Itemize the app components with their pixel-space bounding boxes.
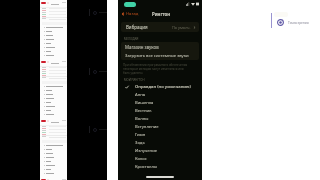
button[interactable]: Вестник (118, 107, 202, 115)
staticText: Вишенка (135, 100, 154, 106)
staticText: Загрузить все системные звуки (125, 53, 189, 59)
button[interactable]: Оправдан (по умолчанию) (118, 83, 202, 91)
button[interactable]: Загрузить все системные звуки (121, 51, 199, 60)
staticText: Анна (135, 92, 146, 98)
staticText: МОЙ РИНГТОН (124, 78, 145, 82)
button[interactable]: Вишенка (118, 99, 202, 107)
staticText: Оправдан (по умолчанию) (135, 84, 191, 90)
button[interactable]: Зодь (118, 139, 202, 147)
staticText: Назад (126, 11, 139, 17)
staticText: Кристаллы (135, 164, 158, 170)
staticText: Вестник (135, 108, 152, 114)
staticText: Волны (135, 116, 149, 122)
staticText: Точка зрения (288, 21, 309, 25)
staticText: МЕЛОДИИ (124, 37, 139, 41)
staticText: По умолч. (172, 25, 191, 30)
staticText: Рингтон (152, 11, 171, 17)
staticText: Вибрация (126, 24, 148, 30)
button[interactable]: Кристаллы (118, 163, 202, 171)
button[interactable]: Анна (118, 91, 202, 99)
button[interactable]: Вступление (118, 123, 202, 131)
staticText: Зодь (135, 140, 145, 146)
button[interactable]: Назад (118, 10, 141, 18)
staticText: Гимн (135, 132, 146, 138)
button[interactable]: Гимн (118, 131, 202, 139)
button[interactable]: Вибрация (121, 22, 199, 32)
staticText: Вступление (135, 124, 159, 130)
staticText: Кокос (135, 156, 147, 162)
button[interactable]: Излучение (118, 147, 202, 155)
button[interactable]: Кокос (118, 155, 202, 163)
staticText: При обновлении программного обеспечения … (123, 63, 191, 75)
button[interactable]: Магазин звуков (121, 42, 199, 51)
staticText: Магазин звуков (125, 44, 159, 50)
button[interactable]: Волны (118, 115, 202, 123)
staticText: Излучение (135, 148, 158, 154)
